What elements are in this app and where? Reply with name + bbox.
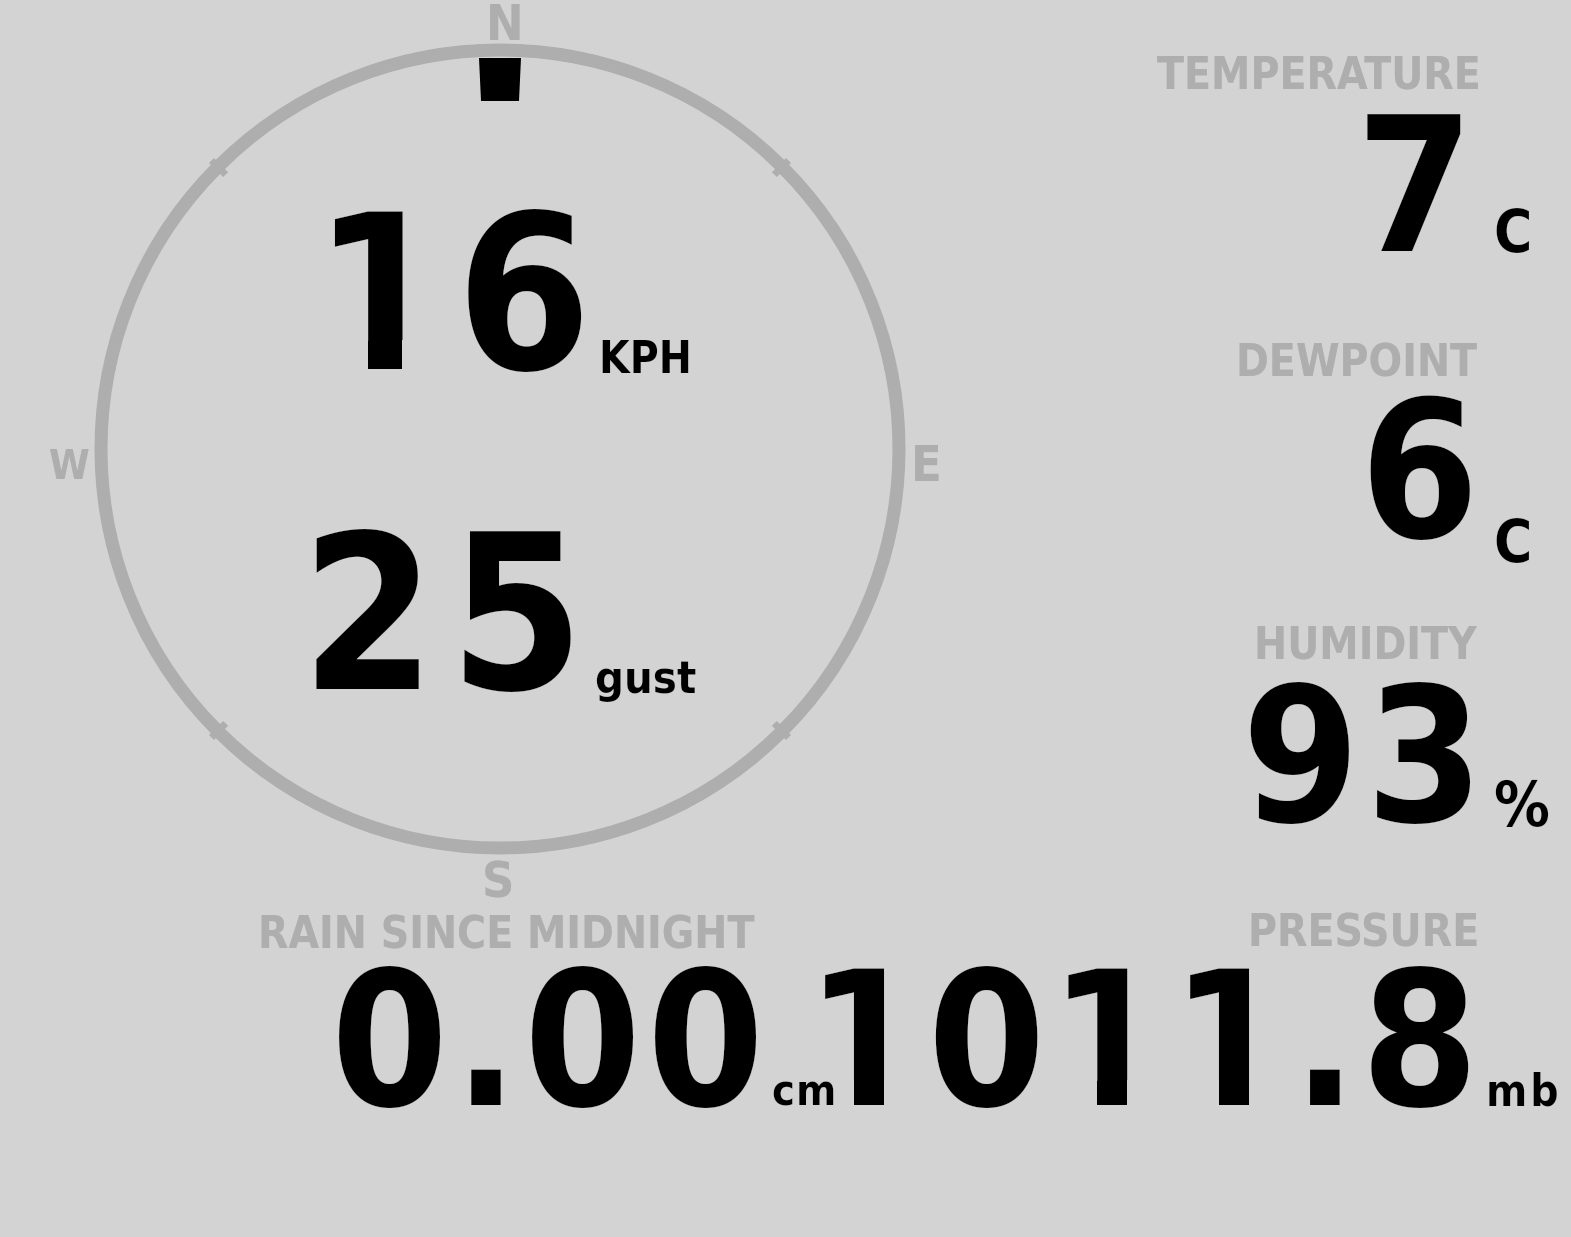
staticText: RAIN SINCE MIDNIGHT [258,907,755,958]
staticText: 25 [301,489,599,739]
staticText: 16 [313,169,600,420]
staticText: 0.00 [331,931,771,1149]
staticText: PRESSURE [1248,905,1480,956]
staticText: 7 [1356,76,1474,295]
staticText: 1011.8 [806,930,1483,1149]
button[interactable]: Humidity 93 percent [1000,600,1571,880]
staticText: W [49,441,90,489]
staticText: E [911,435,942,493]
staticText: HUMIDITY [1254,618,1477,669]
staticText: 6 [1360,361,1479,582]
button[interactable]: Rain since midnight 0.00 cm [240,890,860,1130]
staticText: N [486,0,524,52]
button[interactable]: Wind 16 KPH, gusting 25, from North [40,0,960,900]
staticText: DEWPOINT [1236,335,1478,386]
staticText: % [1494,768,1550,840]
button[interactable]: Temperature 7 degrees C [1000,30,1571,300]
staticText: 93 [1242,646,1490,865]
staticText: mb [1486,1065,1562,1116]
staticText: KPH [599,332,692,383]
button[interactable]: Dewpoint 6 degrees C [1000,320,1571,590]
staticText: C [1494,198,1533,266]
staticText: S [482,851,515,909]
button[interactable]: Pressure 1011.8 mb [870,890,1570,1130]
staticText: cm [772,1065,838,1115]
staticText: TEMPERATURE [1157,48,1481,99]
staticText: gust [595,651,697,703]
staticText: C [1494,508,1533,576]
